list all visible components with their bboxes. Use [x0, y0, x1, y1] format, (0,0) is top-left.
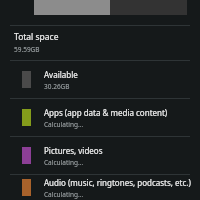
- staticText: 59.59GB: [14, 45, 40, 54]
- staticText: Calculating…: [44, 120, 84, 129]
- button[interactable]: Pictures, videos: [0, 137, 200, 174]
- button[interactable]: Audio (music, ringtones, podcasts, etc.): [0, 175, 200, 200]
- staticText: Apps (app data & media content): [44, 107, 168, 118]
- button[interactable]: Available: [0, 61, 200, 98]
- staticText: Audio (music, ringtones, podcasts, etc.): [44, 177, 191, 188]
- staticText: Pictures, videos: [44, 145, 103, 156]
- button[interactable]: Total space: [0, 26, 200, 60]
- staticText: 30.26GB: [44, 82, 70, 91]
- staticText: Calculating…: [44, 190, 84, 199]
- staticText: Total space: [14, 31, 59, 43]
- staticText: Available: [44, 69, 78, 80]
- button[interactable]: Apps (app data & media content): [0, 99, 200, 136]
- staticText: Calculating…: [44, 158, 84, 167]
